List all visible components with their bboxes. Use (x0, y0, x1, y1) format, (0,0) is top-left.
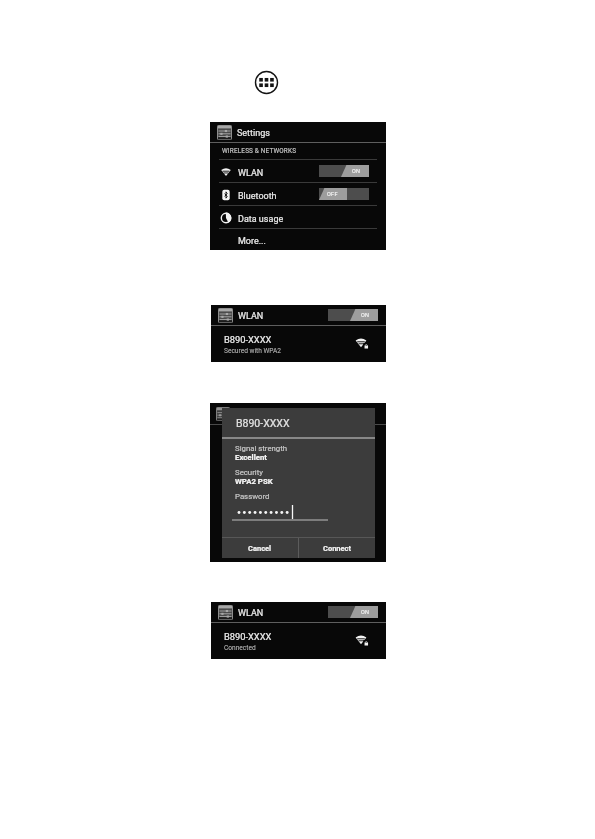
staticText: Signal strength (235, 444, 288, 453)
button[interactable]: B890-XXXX (211, 326, 386, 362)
button[interactable]: More... (210, 229, 386, 250)
staticText: WLAN (238, 608, 264, 619)
button[interactable]: Connect (299, 538, 375, 558)
staticText: Data usage (238, 214, 284, 225)
button[interactable]: B890-XXXX (211, 623, 386, 659)
staticText: B890-XXXX (236, 417, 290, 429)
staticText: Bluetooth (238, 191, 277, 202)
button[interactable]: Apps (254, 70, 279, 95)
staticText: WLAN (238, 311, 264, 322)
staticText: Password (235, 492, 270, 501)
button[interactable]: Turn off (328, 606, 378, 618)
button[interactable]: Data usage (210, 206, 386, 228)
staticText: Connect (323, 544, 352, 553)
staticText: Excellent (235, 453, 267, 462)
staticText: Cancel (248, 544, 272, 553)
staticText: WPA2 PSK (235, 477, 273, 486)
staticText: ON (361, 312, 370, 318)
button[interactable]: Settings (210, 122, 386, 142)
button[interactable]: WLAN (210, 160, 386, 182)
button[interactable]: Turn on (319, 188, 369, 200)
button[interactable]: Turn off (319, 165, 369, 177)
staticText: More... (238, 236, 266, 247)
staticText: B890-XXXX (224, 631, 272, 642)
staticText: B890-XXXX (224, 334, 272, 345)
staticText: WIRELESS & NETWORKS (222, 147, 297, 155)
staticText: Secured with WPA2 (224, 347, 282, 355)
button[interactable]: Bluetooth (210, 183, 386, 205)
button[interactable]: WLAN (211, 305, 386, 325)
staticText: Settings (237, 128, 270, 139)
button[interactable]: WLAN (211, 602, 386, 622)
staticText: ON (352, 168, 361, 174)
button[interactable]: Turn off (328, 309, 378, 321)
staticText: Security (235, 468, 263, 477)
staticText: Connected (224, 644, 256, 652)
staticText: ON (361, 609, 370, 615)
staticText: WLAN (238, 168, 264, 179)
button[interactable]: Cancel (222, 538, 298, 558)
staticText: OFF (327, 191, 338, 197)
